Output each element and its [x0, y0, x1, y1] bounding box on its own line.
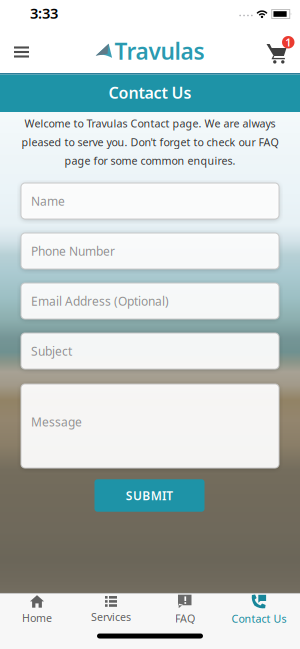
- staticText: Phone Number: [31, 243, 115, 259]
- staticText: Contact Us: [108, 82, 191, 103]
- button[interactable]: SUBMIT: [94, 479, 204, 512]
- button[interactable]: Home: [0, 590, 74, 630]
- button[interactable]: Phone Number: [21, 233, 279, 269]
- staticText: Travulas: [114, 36, 204, 66]
- staticText: Message: [31, 414, 82, 430]
- staticText: Name: [31, 193, 65, 209]
- button[interactable]: Subject: [21, 333, 279, 369]
- button[interactable]: Contact Us: [222, 590, 296, 630]
- button[interactable]: FAQ: [148, 590, 222, 630]
- staticText: Contact Us: [231, 611, 286, 626]
- staticText: Subject: [31, 343, 72, 359]
- staticText: page for some common enquires.: [64, 154, 235, 168]
- staticText: 3:33: [30, 3, 58, 23]
- staticText: SUBMIT: [126, 487, 173, 503]
- staticText: pleased to serve you. Don't forget to ch…: [21, 135, 278, 149]
- staticText: Services: [91, 610, 131, 624]
- staticText: Home: [22, 611, 52, 625]
- staticText: FAQ: [175, 611, 195, 625]
- staticText: 1: [285, 35, 291, 49]
- button[interactable]: Email Address (Optional): [21, 283, 279, 319]
- button[interactable]: Cart: [263, 35, 291, 64]
- button[interactable]: Services: [74, 590, 148, 630]
- staticText: Email Address (Optional): [31, 293, 169, 309]
- staticText: Welcome to Travulas Contact page. We are…: [24, 116, 275, 130]
- button[interactable]: Menu: [6, 37, 36, 67]
- button[interactable]: Message: [21, 384, 279, 468]
- button[interactable]: Name: [21, 183, 279, 219]
